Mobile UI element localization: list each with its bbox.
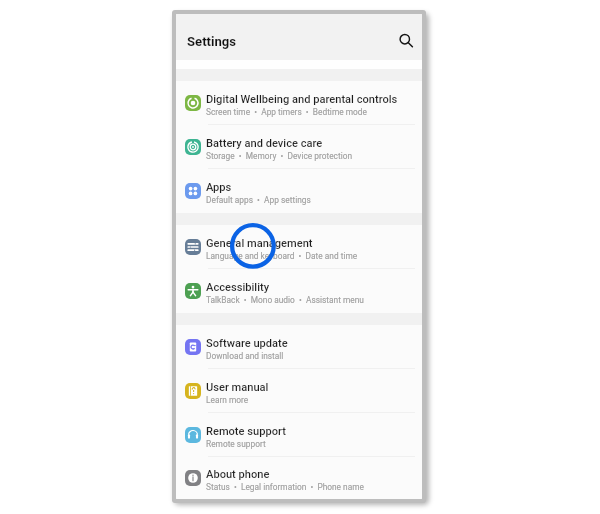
staticText: Software update [206, 337, 288, 350]
staticText: General management [206, 237, 313, 250]
staticText: User manual [206, 381, 269, 394]
staticText: Apps [206, 181, 232, 194]
button[interactable]: Battery and device care [176, 125, 422, 169]
button[interactable]: Apps [176, 169, 422, 213]
staticText: Learn more [206, 395, 249, 405]
staticText: TalkBack • Mono audio • Assistant menu [206, 295, 364, 305]
staticText: Accessibility [206, 281, 270, 294]
staticText: Remote support [206, 425, 286, 438]
staticText: Download and install [206, 351, 284, 361]
staticText: Default apps • App settings [206, 195, 311, 205]
staticText: About phone [206, 468, 270, 481]
staticText: Digital Wellbeing and parental controls [206, 93, 398, 106]
button[interactable]: Digital Wellbeing and parental controls [176, 81, 422, 125]
staticText: Remote support [206, 439, 266, 449]
button[interactable]: General management [176, 225, 422, 269]
staticText: Status • Legal information • Phone name [206, 482, 364, 492]
button[interactable]: Software update [176, 325, 422, 369]
button[interactable]: Search [394, 29, 416, 51]
staticText: Screen time • App timers • Bedtime mode [206, 107, 367, 117]
staticText: Storage • Memory • Device protection [206, 151, 353, 161]
button[interactable]: Remote support [176, 413, 422, 457]
staticText: Settings [187, 34, 236, 49]
button[interactable]: Accessibility [176, 269, 422, 313]
button[interactable]: About phone [176, 457, 422, 499]
staticText: Battery and device care [206, 137, 323, 150]
button[interactable]: User manual [176, 369, 422, 413]
staticText: Language and keyboard • Date and time [206, 251, 358, 261]
